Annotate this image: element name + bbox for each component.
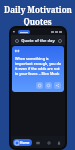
staticText: When something is important enough, you … [15,56,61,76]
staticText: Daily Motivation [4,4,72,15]
staticText: Quote of the day [21,38,55,43]
button[interactable]: Home [13,139,32,146]
button[interactable]: Profile [54,138,63,147]
button[interactable]: Settings [56,37,63,44]
button[interactable]: Copy [36,82,43,89]
button[interactable]: Menu [13,37,20,44]
button[interactable]: Favorite [45,82,52,89]
button[interactable]: When something is important enough, you … [12,46,64,92]
button[interactable]: Categories [33,138,42,147]
staticText: Home [20,141,30,145]
staticText: Quotes [23,16,52,27]
button[interactable]: Share [54,82,61,89]
button[interactable]: Favorites [44,138,53,147]
